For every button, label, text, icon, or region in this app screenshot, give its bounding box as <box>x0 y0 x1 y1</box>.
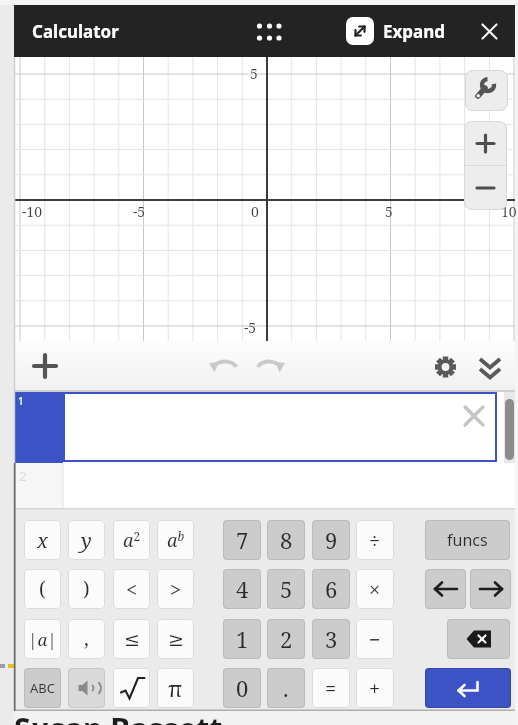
staticText: 9 <box>325 525 338 555</box>
button[interactable]: y <box>68 520 105 560</box>
button[interactable]: ABC <box>24 668 61 708</box>
staticText: funcs <box>447 529 488 551</box>
staticText: ( <box>39 576 46 602</box>
button[interactable] <box>447 619 510 659</box>
staticText: < <box>126 576 138 603</box>
staticText: Expand <box>383 20 446 43</box>
staticText: 6 <box>325 574 338 604</box>
staticText: -5 <box>133 202 146 221</box>
button[interactable]: x <box>24 520 61 560</box>
button[interactable]: ab <box>157 520 194 560</box>
staticText: × <box>369 576 381 603</box>
button[interactable]: 7 <box>223 520 261 560</box>
staticText: a2 <box>123 528 141 553</box>
button[interactable]: Expand <box>346 17 446 45</box>
button[interactable] <box>464 166 507 210</box>
button[interactable]: ≤ <box>113 619 150 659</box>
button[interactable]: + <box>356 668 394 708</box>
button[interactable] <box>465 70 508 111</box>
button[interactable] <box>470 569 511 609</box>
button[interactable] <box>249 12 309 52</box>
button[interactable]: = <box>312 668 350 708</box>
button[interactable]: funcs <box>425 520 510 560</box>
button[interactable] <box>424 345 466 387</box>
staticText: > <box>170 576 182 603</box>
staticText: = <box>325 675 337 702</box>
staticText: π <box>168 673 183 703</box>
staticText: ÷ <box>369 527 381 554</box>
staticText: Susan Bassett <box>14 708 223 725</box>
button[interactable]: ) <box>68 569 105 609</box>
button[interactable]: 5 <box>267 569 305 609</box>
button[interactable]: . <box>267 668 305 708</box>
button[interactable] <box>63 392 497 462</box>
staticText: 5 <box>250 64 258 83</box>
staticText: , <box>84 626 89 652</box>
staticText: x <box>37 527 48 554</box>
staticText: 5 <box>385 202 393 221</box>
button[interactable]: < <box>113 569 150 609</box>
staticText: 1 <box>236 624 249 654</box>
button[interactable] <box>425 569 466 609</box>
staticText: 8 <box>280 525 293 555</box>
button[interactable]: 9 <box>312 520 350 560</box>
staticText: ≤ <box>124 628 140 650</box>
button[interactable]: 4 <box>223 569 261 609</box>
button[interactable] <box>113 668 150 708</box>
staticText: 0 <box>236 673 249 703</box>
button[interactable]: 3 <box>312 619 350 659</box>
button[interactable]: a2 <box>113 520 150 560</box>
staticText: 5 <box>280 574 293 604</box>
staticText: Calculator <box>32 20 119 43</box>
staticText: . <box>283 673 289 703</box>
button[interactable]: 2 <box>267 619 305 659</box>
button[interactable]: 0 <box>223 668 261 708</box>
staticText: 4 <box>236 574 249 604</box>
staticText: 10 <box>501 202 517 221</box>
button[interactable]: > <box>157 569 194 609</box>
button[interactable]: 8 <box>267 520 305 560</box>
button[interactable]: 1 <box>14 392 63 463</box>
button[interactable]: − <box>356 619 394 659</box>
button[interactable] <box>204 345 246 387</box>
button[interactable]: 1 <box>223 619 261 659</box>
staticText: ≥ <box>168 628 184 650</box>
staticText: 7 <box>236 525 249 555</box>
staticText: + <box>369 675 381 702</box>
staticText: 3 <box>325 624 338 654</box>
staticText: 2 <box>19 467 27 485</box>
staticText: 2 <box>280 624 293 654</box>
button[interactable]: , <box>68 619 105 659</box>
staticText: ) <box>83 576 90 602</box>
button[interactable] <box>425 668 511 708</box>
staticText: -10 <box>22 202 42 221</box>
button[interactable]: |a| <box>24 619 61 659</box>
button[interactable]: ÷ <box>356 520 394 560</box>
staticText: 0 <box>251 202 259 221</box>
staticText: |a| <box>28 628 57 651</box>
button[interactable]: × <box>356 569 394 609</box>
button[interactable] <box>472 14 508 50</box>
staticText: ab <box>167 528 185 553</box>
button[interactable] <box>469 345 511 387</box>
staticText: ABC <box>30 679 55 697</box>
button[interactable] <box>458 400 490 432</box>
button[interactable]: ≥ <box>157 619 194 659</box>
staticText: -5 <box>244 318 257 337</box>
button[interactable] <box>464 121 507 166</box>
button[interactable] <box>248 345 290 387</box>
staticText: y <box>81 527 92 554</box>
staticText: − <box>369 626 381 653</box>
button[interactable]: 6 <box>312 569 350 609</box>
button[interactable]: π <box>157 668 194 708</box>
staticText: 1 <box>18 394 24 408</box>
button[interactable] <box>24 345 66 387</box>
button[interactable]: ( <box>24 569 61 609</box>
button[interactable] <box>68 668 105 708</box>
